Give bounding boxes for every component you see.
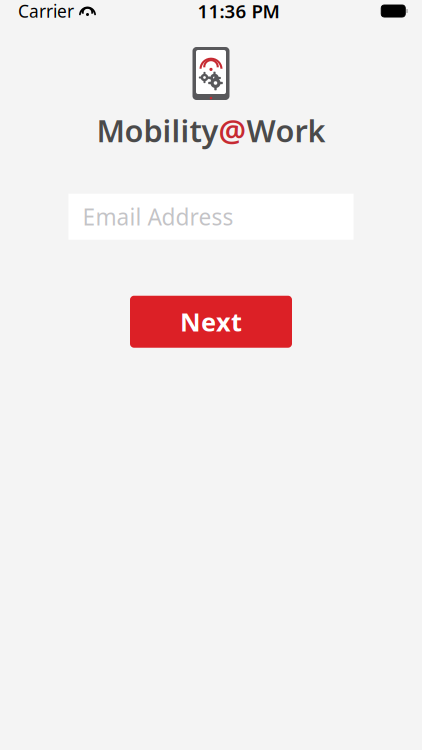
staticText: Work [246,110,325,151]
button[interactable]: Next [130,296,292,348]
button[interactable]: Email Address [68,194,353,240]
staticText: Next [180,305,242,338]
staticText: @ [218,110,246,151]
staticText: Carrier [18,0,74,22]
staticText: Email Address [82,202,233,232]
staticText: 11:36 PM [197,0,279,23]
staticText: Mobility [96,110,218,151]
